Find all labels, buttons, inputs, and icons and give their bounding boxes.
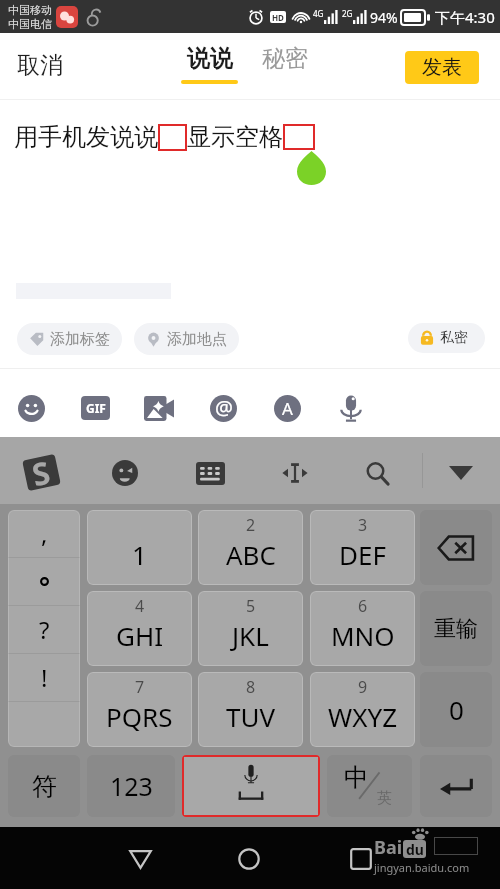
staticText: 说说 [187, 44, 233, 73]
staticText: 4G [313, 8, 324, 19]
staticText: 8 [246, 676, 256, 698]
button[interactable]: 0 [420, 672, 492, 747]
button[interactable]: 6 [310, 591, 415, 666]
button[interactable]: 符 [8, 755, 80, 817]
button[interactable]: Photo [140, 389, 178, 427]
button[interactable]: ! [8, 654, 80, 701]
staticText: 4 [135, 595, 145, 617]
button[interactable]: Backspace [420, 510, 492, 585]
button[interactable] [8, 558, 80, 605]
button[interactable]: Keyboard layout [192, 455, 228, 491]
staticText: 6 [358, 595, 368, 617]
button[interactable]: 9 [310, 672, 415, 747]
button[interactable]: 4 [87, 591, 192, 666]
staticText: 重输 [434, 615, 478, 643]
button[interactable]: 说说 [177, 44, 242, 84]
button[interactable]: 2 [198, 510, 303, 585]
staticText: 秘密 [262, 44, 308, 73]
button[interactable]: Home [228, 838, 270, 880]
staticText: 添加地点 [167, 330, 227, 349]
staticText: 2 [246, 514, 256, 536]
button[interactable]: 7 [87, 672, 192, 747]
staticText: 私密 [440, 329, 468, 347]
button[interactable]: Emoji [12, 389, 50, 427]
button[interactable]: Text format [268, 389, 306, 427]
staticText: ! [41, 661, 48, 694]
button[interactable]: 5 [198, 591, 303, 666]
button[interactable]: Enter [420, 755, 492, 817]
staticText: GIF [86, 400, 106, 416]
button[interactable]: , [8, 510, 80, 557]
staticText: GHI [116, 618, 164, 653]
staticText: 符 [32, 771, 57, 802]
button[interactable]: 秘密 [258, 44, 312, 73]
button[interactable]: Sogou input [22, 455, 60, 489]
button[interactable]: Mention [204, 389, 242, 427]
staticText: 中 [344, 762, 369, 793]
button[interactable]: 添加标签 [17, 323, 122, 355]
button[interactable]: 发表 [405, 51, 479, 84]
button[interactable]: Recent apps [340, 838, 382, 880]
staticText: 下午4:30 [435, 7, 495, 27]
button[interactable]: 私密 [408, 323, 485, 353]
staticText: 94% [370, 8, 398, 27]
button[interactable]: 重输 [420, 591, 492, 666]
staticText: jingyan.baidu.com [374, 860, 470, 875]
staticText: PQRS [106, 699, 173, 734]
staticText: JKL [232, 618, 269, 653]
staticText: 2G [342, 8, 353, 19]
staticText: , [41, 517, 48, 550]
staticText: 中国移动 [8, 3, 52, 17]
button[interactable]: 3 [310, 510, 415, 585]
staticText: DEF [339, 537, 386, 572]
button[interactable]: Back [119, 838, 161, 880]
staticText: @ [215, 395, 233, 421]
staticText: WXYZ [328, 699, 398, 734]
staticText: 7 [135, 676, 145, 698]
staticText: HD [272, 12, 284, 23]
staticText: MNO [331, 618, 395, 653]
button[interactable]: ? [8, 606, 80, 653]
staticText: 发表 [422, 55, 462, 80]
staticText: 0 [449, 692, 464, 727]
staticText: Bai [374, 835, 403, 860]
staticText: 1 [132, 537, 147, 572]
button[interactable]: Search [359, 455, 395, 491]
staticText: du [406, 840, 424, 858]
staticText: 123 [110, 769, 153, 803]
staticText: TUV [226, 699, 276, 734]
button[interactable] [8, 702, 80, 747]
button[interactable]: 8 [198, 672, 303, 747]
button[interactable]: Space [182, 755, 320, 817]
button[interactable]: GIF [76, 389, 114, 427]
staticText: 用手机发说说 [14, 122, 158, 152]
staticText: ? [39, 613, 50, 646]
staticText: 英 [377, 789, 392, 808]
button[interactable]: Move cursor [277, 455, 313, 491]
staticText: ABC [226, 537, 276, 572]
button[interactable]: 123 [87, 755, 175, 817]
staticText: A [282, 397, 293, 420]
button[interactable]: 1 [87, 510, 192, 585]
staticText: 添加标签 [50, 330, 110, 349]
staticText: 中国电信 [8, 17, 52, 31]
staticText: S [28, 451, 53, 488]
button[interactable]: 取消 [4, 43, 76, 88]
staticText: 3 [358, 514, 368, 536]
button[interactable]: Voice [332, 389, 370, 427]
button[interactable]: Emoji [107, 455, 143, 491]
button[interactable]: Chinese English toggle [327, 755, 412, 817]
staticText: 5 [246, 595, 256, 617]
staticText: 9 [358, 676, 368, 698]
button[interactable]: Hide keyboard [443, 455, 479, 491]
button[interactable]: 添加地点 [134, 323, 239, 355]
staticText: 显示空格 [187, 122, 283, 152]
staticText: 取消 [17, 51, 63, 80]
